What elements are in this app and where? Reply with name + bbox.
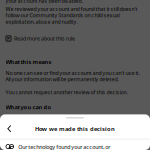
staticText: your account has been disabled. [5, 0, 82, 4]
staticText: Read more about this rule [14, 35, 75, 42]
staticText: Our technology found your account, or [18, 143, 110, 150]
button[interactable]: Back [5, 122, 14, 135]
staticText: How we made this decision [35, 125, 115, 133]
button[interactable]: Read more about this rule [5, 35, 146, 42]
staticText: We reviewed your account and found that … [5, 5, 137, 25]
staticText: No one can see or find your account and … [5, 69, 139, 83]
staticText: What this means [5, 58, 51, 66]
staticText: You cannot request another review of thi… [5, 88, 127, 96]
staticText: What you can do [5, 103, 51, 111]
